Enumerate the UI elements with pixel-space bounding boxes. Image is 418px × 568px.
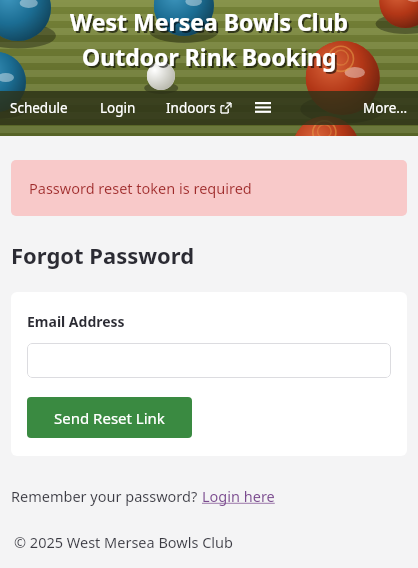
staticText: More... (363, 99, 408, 117)
button[interactable]: Schedule (10, 95, 68, 121)
staticText: West Mersea Bowls Club (72, 8, 351, 39)
staticText: Remember your password? (11, 486, 202, 506)
staticText: Password reset token is required (29, 178, 252, 198)
button[interactable]: Indoors (166, 95, 231, 121)
staticText: Schedule (10, 99, 68, 117)
staticText: Login (100, 99, 136, 117)
staticText: © 2025 West Mersea Bowls Club (14, 532, 233, 552)
staticText: West Mersea Bowls Club (70, 6, 349, 37)
staticText: Indoors (166, 99, 216, 117)
button[interactable]: More... (363, 95, 408, 121)
button[interactable]: Send Reset Link (27, 397, 192, 438)
staticText: Login here (202, 486, 275, 506)
button[interactable] (27, 343, 391, 378)
button[interactable]: Login here (202, 486, 275, 506)
staticText: Email Address (27, 312, 125, 331)
staticText: Outdoor Rink Booking (84, 43, 339, 74)
button[interactable]: Password reset token is required (11, 160, 407, 216)
staticText: Forgot Password (11, 240, 195, 270)
button[interactable]: Menu (253, 98, 273, 118)
button[interactable]: Login (100, 95, 136, 121)
staticText: Send Reset Link (54, 408, 165, 428)
staticText: Outdoor Rink Booking (82, 41, 337, 72)
